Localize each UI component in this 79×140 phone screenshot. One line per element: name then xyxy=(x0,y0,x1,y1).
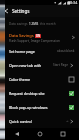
button[interactable]: Recents xyxy=(56,128,69,140)
staticText: 1.3MB xyxy=(29,22,39,26)
staticText: this month xyxy=(39,22,56,26)
staticText: Flash Support, Image Compression xyxy=(9,39,60,43)
button[interactable]: Request desktop site xyxy=(0,86,79,100)
staticText: Data Savings xyxy=(9,33,34,38)
staticText: Data savings xyxy=(9,22,29,26)
staticText: → xyxy=(66,119,69,123)
button[interactable]: Home xyxy=(33,128,46,140)
button[interactable]: Back xyxy=(10,128,23,140)
staticText: Open new tab with xyxy=(9,63,53,68)
staticText: Color theme xyxy=(9,77,69,82)
button[interactable]: Color theme xyxy=(0,72,79,86)
staticText: Set home page xyxy=(9,49,57,54)
staticText: Request desktop site xyxy=(9,91,69,96)
button[interactable]: Open new tab with xyxy=(0,58,79,72)
button[interactable]: Quick control xyxy=(0,114,79,128)
staticText: about:blank xyxy=(57,49,75,53)
staticText: Settings xyxy=(12,8,30,14)
button[interactable]: Set home page xyxy=(0,44,79,58)
staticText: Start Page xyxy=(53,63,69,67)
button[interactable]: Back xyxy=(0,5,12,17)
staticText: Block pop-up windows xyxy=(9,105,69,110)
staticText: ON xyxy=(36,34,40,38)
button[interactable]: Data Savings xyxy=(0,31,79,44)
staticText: Quick control xyxy=(9,119,66,124)
staticText: 18:34 xyxy=(68,0,78,5)
button[interactable]: Block pop-up windows xyxy=(0,100,79,114)
